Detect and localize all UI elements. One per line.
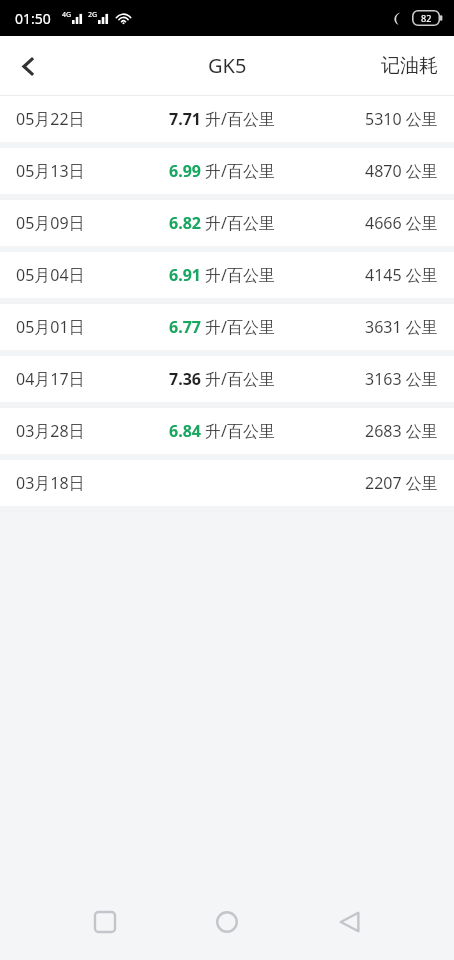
staticText: GK5 (208, 52, 247, 79)
button[interactable]: 05月04日 (0, 252, 454, 298)
staticText: 05月13日 (16, 160, 85, 182)
button[interactable]: Home (197, 892, 257, 952)
staticText: 5310 公里 (365, 108, 438, 130)
staticText: 82 (421, 12, 432, 24)
staticText: 2207 公里 (365, 472, 438, 494)
staticText: 3631 公里 (365, 316, 438, 338)
staticText: 2G (88, 10, 98, 20)
staticText: 4870 公里 (365, 160, 438, 182)
button[interactable]: 03月18日 (0, 460, 454, 506)
staticText: 记油耗 (381, 54, 438, 78)
button[interactable]: Recents (75, 892, 135, 952)
staticText: 7.36 升/百公里 (169, 368, 276, 390)
button[interactable]: 记油耗 (365, 40, 454, 92)
staticText: 03月18日 (16, 472, 85, 494)
button[interactable]: Back (0, 38, 56, 94)
staticText: 6.84 升/百公里 (169, 420, 276, 442)
staticText: 6.77 升/百公里 (169, 316, 276, 338)
staticText: 05月22日 (16, 108, 85, 130)
button[interactable]: Back (320, 892, 380, 952)
staticText: 4145 公里 (365, 264, 438, 286)
staticText: 2683 公里 (365, 420, 438, 442)
staticText: 3163 公里 (365, 368, 438, 390)
staticText: 6.91 升/百公里 (169, 264, 276, 286)
staticText: 4G (62, 10, 72, 20)
button[interactable]: 03月28日 (0, 408, 454, 454)
staticText: 05月01日 (16, 316, 85, 338)
staticText: 05月04日 (16, 264, 85, 286)
staticText: 6.99 升/百公里 (169, 160, 276, 182)
staticText: 04月17日 (16, 368, 85, 390)
staticText: 03月28日 (16, 420, 85, 442)
button[interactable]: 04月17日 (0, 356, 454, 402)
staticText: 7.71 升/百公里 (169, 108, 276, 130)
button[interactable]: 05月13日 (0, 148, 454, 194)
staticText: 05月09日 (16, 212, 85, 234)
button[interactable]: 05月09日 (0, 200, 454, 246)
staticText: 4666 公里 (365, 212, 438, 234)
button[interactable]: 05月22日 (0, 96, 454, 142)
button[interactable]: 05月01日 (0, 304, 454, 350)
staticText: 01:50 (15, 9, 51, 28)
staticText: 6.82 升/百公里 (169, 212, 276, 234)
